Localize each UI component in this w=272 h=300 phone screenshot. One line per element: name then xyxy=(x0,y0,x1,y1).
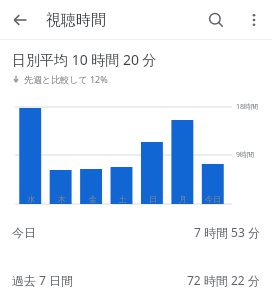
staticText: 金 xyxy=(89,194,97,204)
staticText: 72 時間 22 分 xyxy=(187,272,260,288)
staticText: 今日 xyxy=(205,194,221,204)
staticText: 木 xyxy=(58,194,66,204)
staticText: 9時間 xyxy=(236,150,255,160)
staticText: 7 時間 53 分 xyxy=(194,224,260,240)
staticText: 日 xyxy=(149,194,157,204)
staticText: 視聴時間 xyxy=(46,11,106,30)
button[interactable]: 今日 xyxy=(0,219,272,245)
button[interactable]: More options xyxy=(236,2,272,38)
staticText: 水 xyxy=(27,194,35,204)
staticText: 土 xyxy=(119,194,127,204)
staticText: 18時間 xyxy=(236,102,259,112)
staticText: 先週と比較して 12% xyxy=(24,73,108,85)
staticText: 月 xyxy=(179,194,187,204)
staticText: 日別平均 10 時間 20 分 xyxy=(12,50,157,69)
button[interactable]: Back xyxy=(0,0,40,40)
staticText: 過去 7 日間 xyxy=(12,272,74,288)
button[interactable]: Search xyxy=(196,0,236,40)
staticText: 今日 xyxy=(12,225,36,240)
button[interactable]: 過去 7 日間 xyxy=(0,267,272,293)
